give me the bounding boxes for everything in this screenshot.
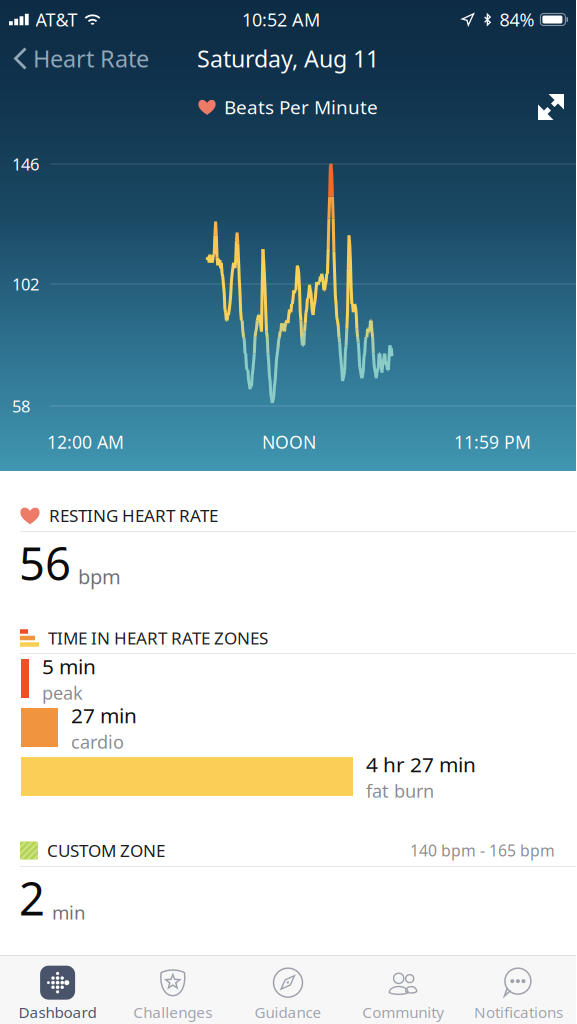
staticText: 58 xyxy=(12,395,30,417)
staticText: bpm xyxy=(78,563,121,590)
staticText: 10:52 AM xyxy=(242,7,320,32)
staticText: Community xyxy=(362,1002,444,1022)
staticText: CUSTOM ZONE xyxy=(47,839,165,862)
staticText: fat burn xyxy=(366,778,434,803)
staticText: 2 xyxy=(19,867,45,929)
staticText: 27 min xyxy=(71,701,137,729)
staticText: RESTING HEART RATE xyxy=(49,504,218,527)
staticText: NOON xyxy=(262,430,316,454)
button[interactable]: Challenges xyxy=(115,955,230,1024)
staticText: AT&T xyxy=(35,7,77,32)
staticText: 102 xyxy=(12,273,39,295)
staticText: 146 xyxy=(12,153,39,175)
staticText: Dashboard xyxy=(19,1002,97,1022)
staticText: TIME IN HEART RATE ZONES xyxy=(48,626,268,650)
button[interactable]: Dashboard xyxy=(0,955,115,1024)
staticText: 56 xyxy=(19,532,71,594)
staticText: 140 bpm - 165 bpm xyxy=(410,840,555,861)
staticText: Saturday, Aug 11 xyxy=(197,43,379,74)
staticText: Challenges xyxy=(133,1002,212,1022)
button[interactable]: Expand chart xyxy=(526,82,576,132)
staticText: Notifications xyxy=(474,1002,563,1022)
staticText: Heart Rate xyxy=(33,42,149,74)
staticText: Guidance xyxy=(254,1002,321,1022)
staticText: min xyxy=(52,900,86,925)
button[interactable]: Notifications xyxy=(461,955,576,1024)
button[interactable]: Heart Rate xyxy=(0,34,157,82)
staticText: 84% xyxy=(499,7,534,32)
staticText: 11:59 PM xyxy=(454,430,531,454)
staticText: 4 hr 27 min xyxy=(366,750,476,778)
staticText: Beats Per Minute xyxy=(224,94,378,120)
staticText: cardio xyxy=(71,729,124,754)
staticText: 12:00 AM xyxy=(47,430,124,454)
button[interactable]: Guidance xyxy=(230,955,346,1024)
staticText: peak xyxy=(42,680,83,705)
staticText: 5 min xyxy=(42,652,96,680)
button[interactable]: Community xyxy=(346,955,461,1024)
